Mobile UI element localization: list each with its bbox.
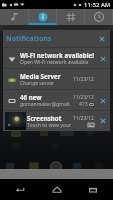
button[interactable]: Dismiss notification — [95, 111, 110, 131]
button[interactable]: Home — [40, 179, 74, 200]
button[interactable]: Media Server — [3, 69, 110, 90]
staticText: 413 — [79, 101, 88, 108]
staticText: 11/23/12 — [73, 94, 94, 101]
button[interactable]: Info — [29, 9, 57, 25]
staticText: 11/23/12 — [73, 76, 94, 83]
staticText: 11/23/12 — [73, 115, 94, 122]
button[interactable]: Screenshot captured. — [3, 111, 110, 131]
button[interactable]: Clock — [85, 9, 113, 25]
button[interactable]: Back — [3, 179, 37, 200]
button[interactable]: 46 new messages — [3, 90, 110, 111]
button[interactable]: Display settings — [57, 9, 85, 25]
staticText: Touch to view your screenshot. — [27, 122, 73, 129]
button[interactable]: Dismiss notification — [95, 48, 110, 69]
staticText: Notifications — [6, 34, 52, 44]
staticText: Change server settings — [20, 80, 73, 87]
staticText: Wi-Fi network available! — [20, 51, 94, 59]
staticText: Open Wi-Fi network available — [20, 59, 89, 66]
staticText: gomanmaker@gmail.com — [20, 101, 73, 108]
button[interactable]: Wi-Fi network available! — [3, 48, 110, 69]
button[interactable]: Recent apps — [76, 179, 110, 200]
button[interactable]: Clear all notifications — [94, 30, 110, 48]
staticText: 46 new messages — [20, 93, 73, 101]
staticText: Screenshot captured. — [27, 114, 73, 122]
button[interactable]: Music — [0, 9, 29, 25]
staticText: 11:52 AM — [84, 1, 111, 9]
button[interactable]: Dismiss notification — [95, 90, 110, 111]
staticText: Media Server — [20, 72, 61, 80]
